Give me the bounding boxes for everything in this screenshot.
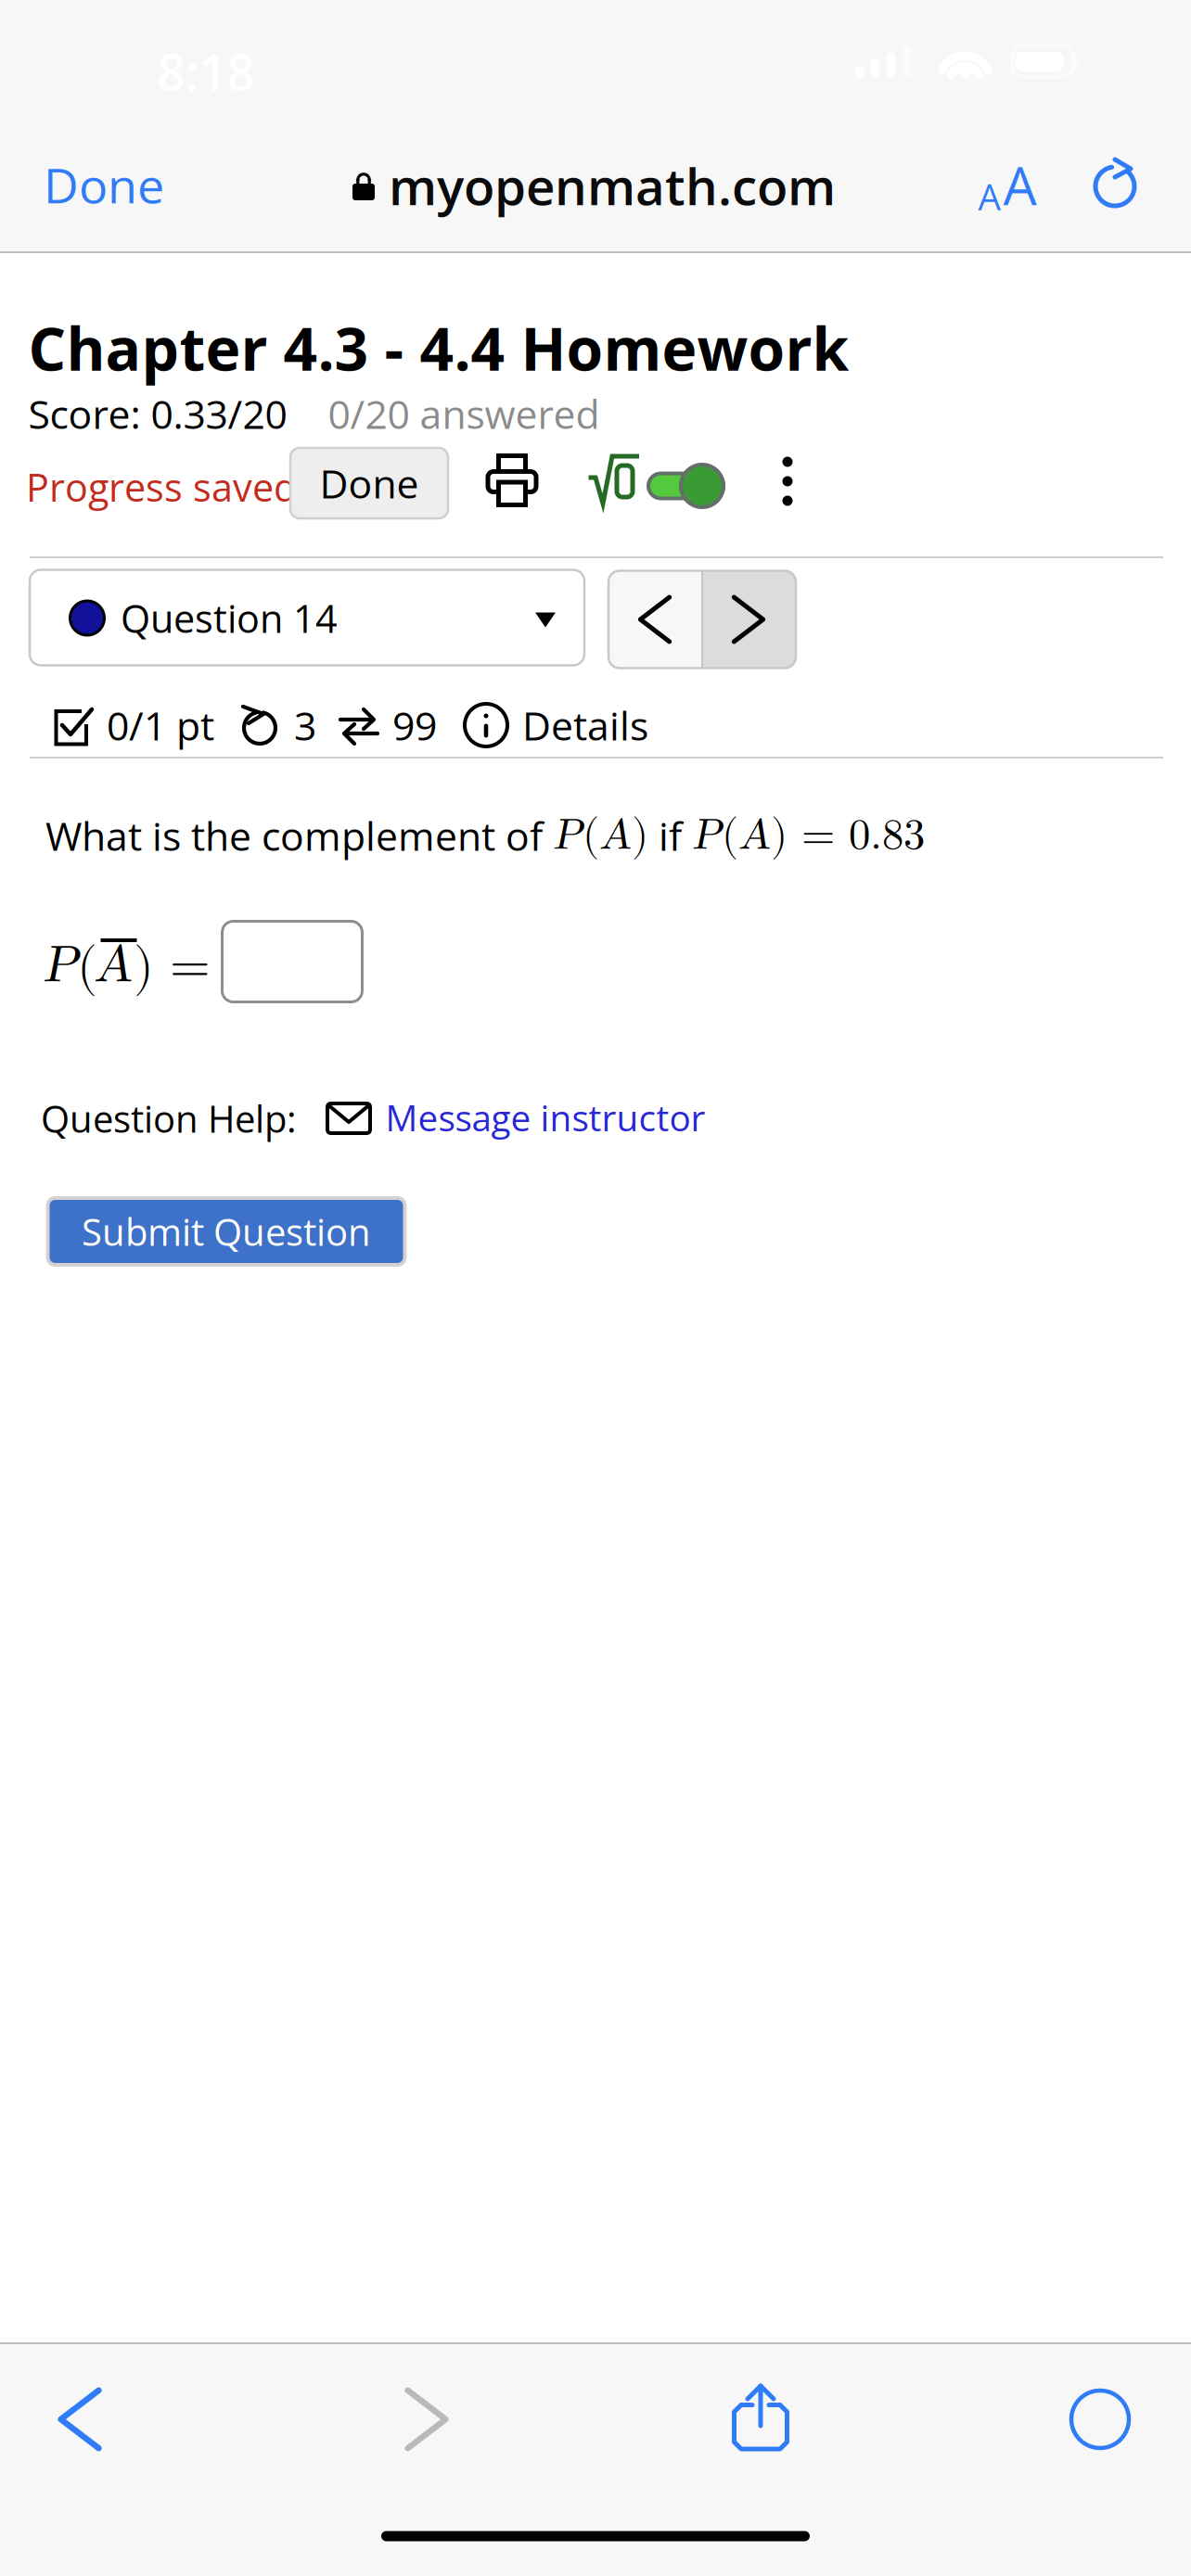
staticText: if — [648, 809, 692, 862]
staticText: ( — [77, 941, 97, 993]
button[interactable]: Submit Question — [48, 1198, 405, 1265]
button[interactable]: Question details — [0, 684, 705, 766]
staticText: Progress saved — [26, 461, 297, 513]
button[interactable]: Share — [691, 2357, 830, 2478]
button[interactable]: Back — [10, 2359, 149, 2480]
button[interactable]: Forward — [357, 2359, 496, 2480]
button[interactable]: More options — [758, 444, 817, 518]
staticText: ) — [771, 814, 788, 857]
staticText: ( — [722, 814, 738, 857]
staticText: Done — [320, 456, 419, 510]
button[interactable]: Text size — [952, 142, 1063, 227]
button[interactable]: Tab overview — [1031, 2359, 1170, 2480]
staticText: Chapter 4.3 - 4.4 Homework — [28, 307, 849, 388]
staticText: Submit Question — [82, 1206, 371, 1257]
staticText: P — [692, 814, 722, 857]
staticText: 99 — [392, 698, 437, 752]
staticText: P — [553, 814, 583, 857]
staticText: ) — [134, 941, 154, 993]
staticText: Done — [44, 152, 164, 217]
button[interactable]: Question 14 — [30, 570, 584, 665]
button[interactable]: Done — [290, 448, 448, 518]
staticText: myopenmath.com — [389, 151, 836, 220]
staticText: A — [599, 814, 632, 857]
button[interactable]: Next question — [702, 571, 795, 668]
staticText: 8:18 — [157, 38, 255, 105]
staticText: A — [94, 939, 133, 991]
button[interactable]: Print — [475, 443, 549, 517]
button[interactable]: Math entry help — [581, 443, 647, 517]
button[interactable]: Previous question — [608, 571, 702, 668]
staticText: Question 14 — [121, 592, 338, 644]
staticText: Details — [522, 698, 648, 752]
staticText: 0/20 answered — [328, 387, 600, 440]
button[interactable]: Done — [44, 140, 201, 229]
staticText: What is the complement of — [45, 809, 553, 862]
button[interactable]: Reload page — [1070, 140, 1159, 229]
staticText: = 0.83 — [788, 814, 925, 857]
staticText: ( — [583, 814, 599, 857]
staticText: Question Help: — [41, 1093, 297, 1144]
staticText: 0/1 pt — [107, 698, 214, 752]
staticText: ) — [632, 814, 648, 857]
button[interactable]: Toggle math palette — [642, 449, 735, 523]
staticText: = — [170, 940, 211, 992]
staticText: A — [738, 814, 771, 857]
staticText: P — [43, 939, 78, 991]
staticText: Score: 0.33/20 — [28, 387, 287, 440]
staticText: Message instructor — [385, 1093, 705, 1142]
staticText: 3 — [294, 698, 316, 752]
staticText: A — [978, 172, 1000, 221]
button[interactable]: Message instructor — [327, 1081, 735, 1155]
staticText: A — [1003, 148, 1037, 221]
